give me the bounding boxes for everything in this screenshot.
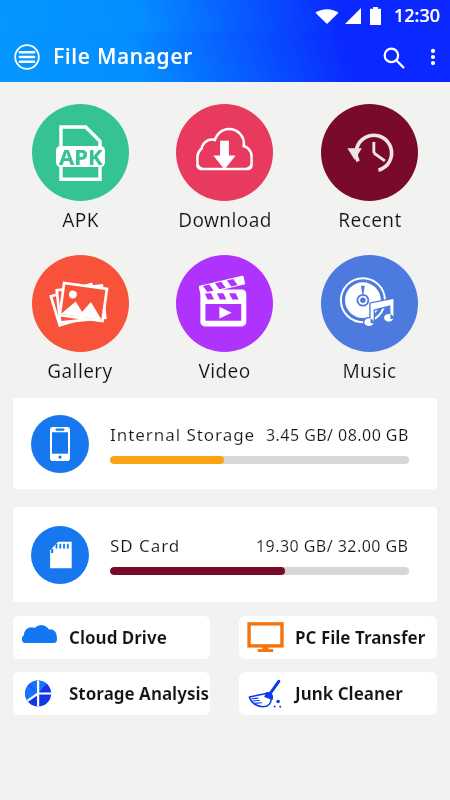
staticText: Download (178, 207, 272, 233)
staticText: Recent (338, 207, 402, 233)
button[interactable]: Navigation menu (0, 31, 53, 82)
button[interactable]: Recent (297, 104, 442, 233)
button[interactable]: SD Card (13, 507, 437, 602)
staticText: 12:30 (394, 3, 441, 28)
button[interactable]: Video (152, 255, 297, 384)
staticText: Storage Analysis (69, 682, 210, 705)
button[interactable]: Gallery (8, 255, 152, 384)
staticText: File Manager (53, 42, 193, 71)
staticText: SD Card (110, 534, 181, 557)
staticText: Cloud Drive (69, 626, 167, 649)
button[interactable]: More options (416, 40, 450, 74)
staticText: PC File Transfer (295, 626, 426, 649)
button[interactable]: PC File Transfer (239, 616, 437, 659)
staticText: Gallery (47, 358, 113, 384)
staticText: Internal Storage (110, 423, 256, 446)
button[interactable]: Download (152, 104, 297, 233)
button[interactable]: Junk Cleaner (239, 672, 437, 715)
staticText: APK (62, 207, 99, 233)
staticText: APK (59, 141, 103, 171)
staticText: Junk Cleaner (295, 682, 403, 705)
button[interactable]: Music (297, 255, 442, 384)
staticText: Video (198, 358, 251, 384)
staticText: Music (342, 358, 397, 384)
button[interactable]: Storage Analysis (13, 672, 210, 715)
staticText: 19.30 GB/ 32.00 GB (256, 535, 409, 557)
button[interactable]: Internal Storage (13, 398, 437, 489)
button[interactable]: Cloud Drive (13, 616, 210, 659)
button[interactable]: APK (8, 104, 152, 233)
button[interactable]: Search (370, 34, 416, 80)
staticText: 3.45 GB/ 08.00 GB (266, 424, 409, 446)
